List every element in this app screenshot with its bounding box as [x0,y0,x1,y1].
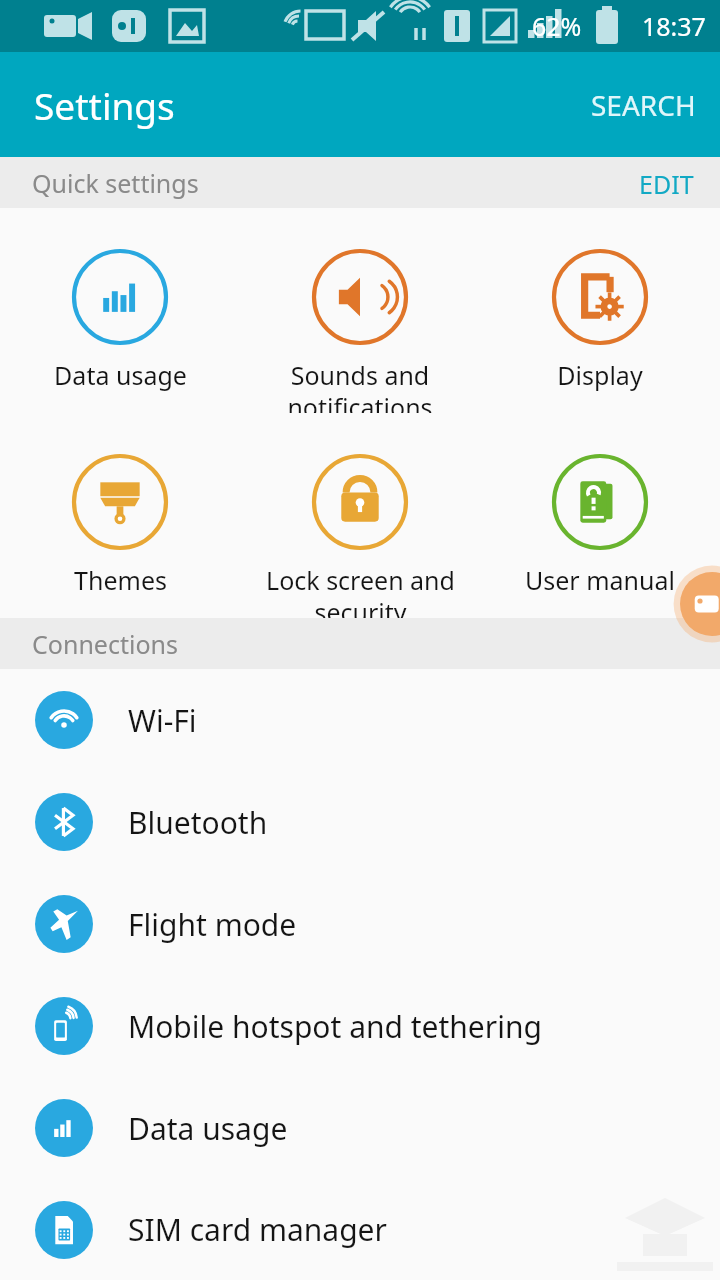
staticText: Settings [34,80,175,130]
staticText: Lock screen and security [266,563,455,618]
staticText: Connections [32,627,178,661]
button[interactable]: Wi-Fi [0,669,720,771]
button[interactable]: Screen recorder [672,564,720,644]
staticText: Themes [74,563,167,597]
staticText: Bluetooth [128,802,268,843]
button[interactable]: Flight mode [0,873,720,975]
button[interactable]: Bluetooth [0,771,720,873]
staticText: EDIT [639,167,694,198]
staticText: User manual [525,563,675,597]
button[interactable]: User manual [480,413,720,618]
button[interactable]: EDIT [613,157,720,208]
button[interactable]: SIM card manager [0,1179,720,1280]
button[interactable]: Data usage [0,1077,720,1179]
staticText: SIM card manager [128,1209,387,1250]
staticText: Quick settings [32,166,199,200]
staticText: Wi-Fi [128,700,197,741]
button[interactable]: Display [480,208,720,413]
button[interactable]: Mobile hotspot and tethering [0,975,720,1077]
staticText: Data usage [54,358,187,392]
staticText: SEARCH [591,86,696,124]
staticText: Mobile hotspot and tethering [128,1006,542,1047]
button[interactable]: Lock screen and security [240,413,480,618]
button[interactable]: Data usage [0,208,240,413]
staticText: 62% [532,9,582,43]
button[interactable]: Sounds and notifications [240,208,480,413]
staticText: Sounds and notifications [287,358,433,413]
staticText: Flight mode [128,904,297,945]
staticText: Display [557,358,643,392]
button[interactable]: Themes [0,413,240,618]
staticText: 18:37 [642,9,706,43]
button[interactable]: SEARCH [567,66,720,144]
staticText: Data usage [128,1108,288,1149]
